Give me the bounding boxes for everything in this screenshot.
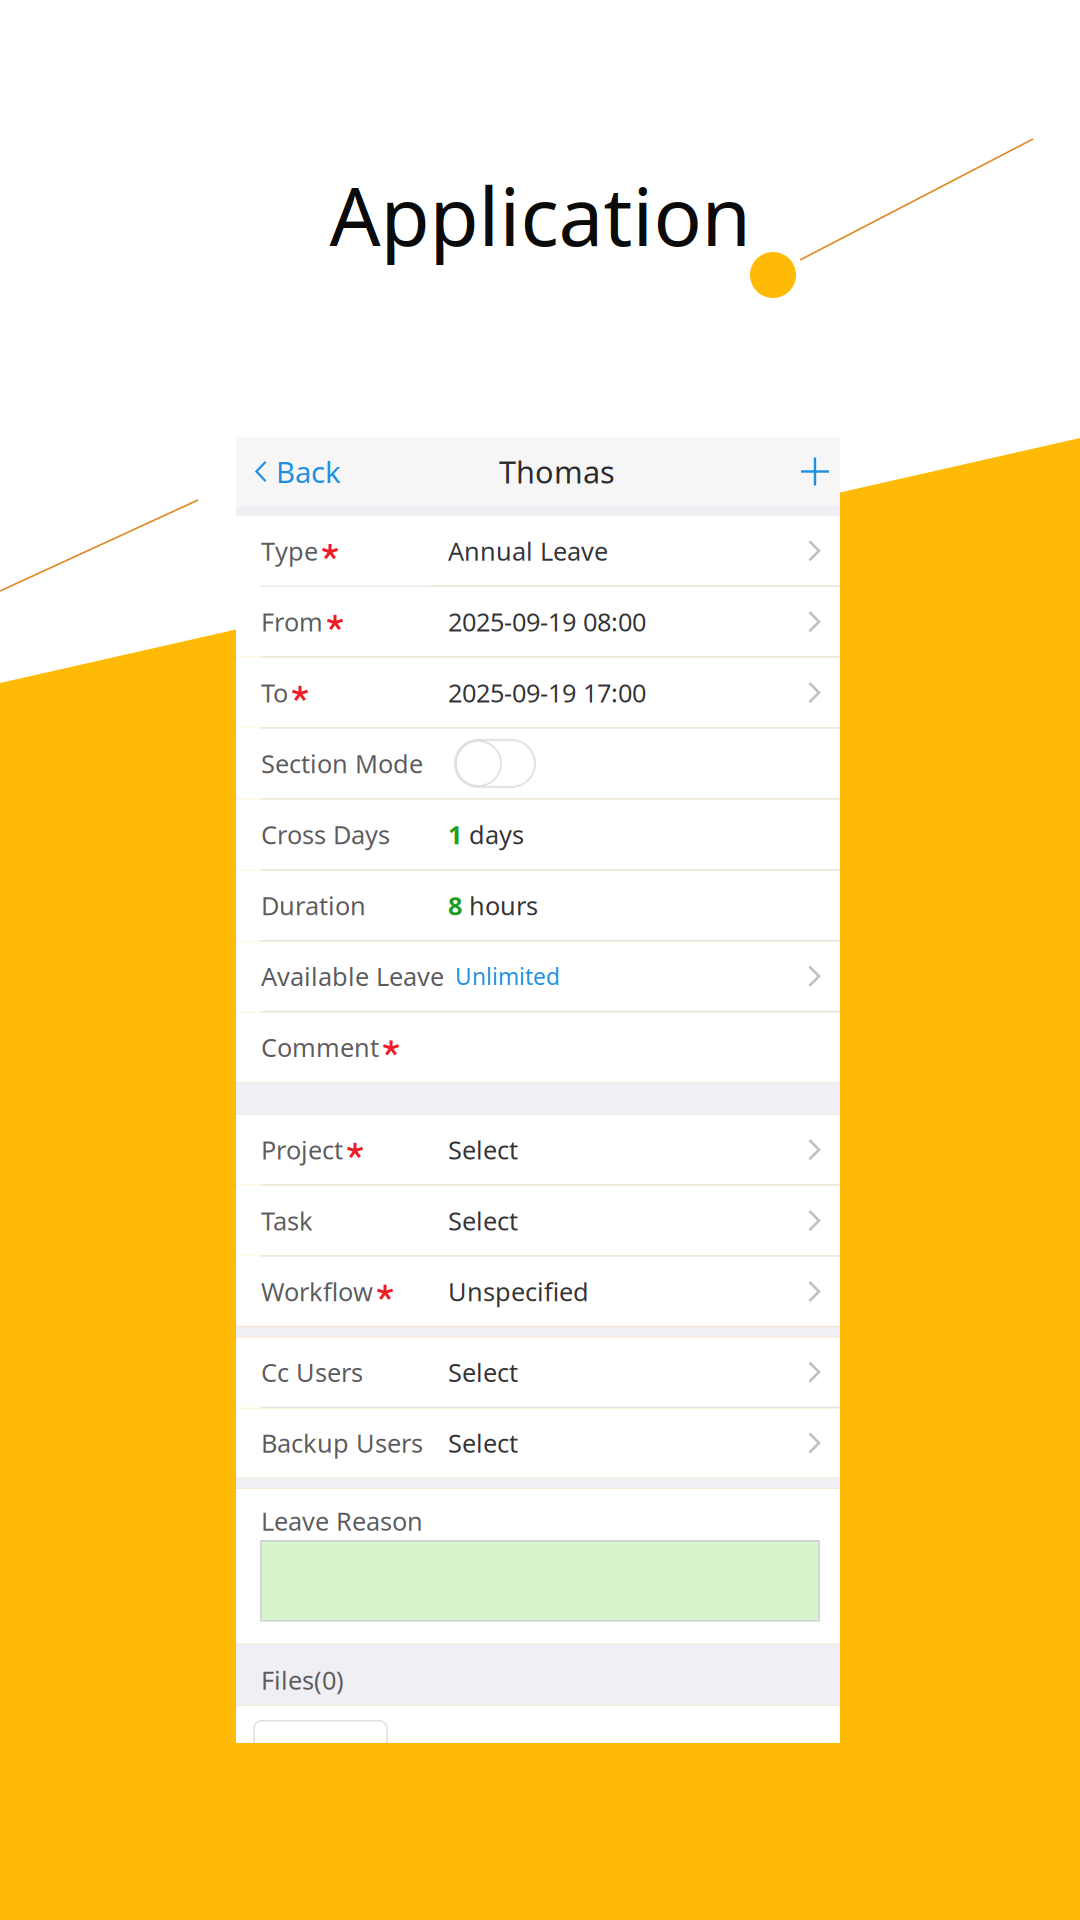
button[interactable]: Available Leave xyxy=(236,941,840,1011)
staticText: Duration xyxy=(261,888,366,922)
button[interactable]: Type xyxy=(236,516,840,586)
staticText: hours xyxy=(462,888,538,922)
staticText: Select xyxy=(448,1426,518,1460)
staticText: Unlimited xyxy=(455,961,560,991)
button[interactable]: Comment xyxy=(236,1012,840,1082)
button[interactable]: Back xyxy=(236,437,357,506)
button[interactable]: Add file xyxy=(254,1721,387,1781)
staticText: Files(0) xyxy=(261,1663,344,1697)
staticText: Unspecified xyxy=(448,1275,589,1308)
staticText: Leave Reason xyxy=(261,1504,423,1538)
staticText: Workflow xyxy=(261,1275,373,1308)
staticText: 2025-09-19 17:00 xyxy=(448,676,646,709)
staticText: Cross Days xyxy=(261,818,390,851)
button[interactable]: Leave reason text field xyxy=(261,1541,819,1621)
staticText: Section Mode xyxy=(261,747,423,780)
staticText: 2025-09-19 08:00 xyxy=(448,605,646,638)
staticText: Annual Leave xyxy=(448,534,608,568)
button[interactable]: Section Mode xyxy=(455,740,535,787)
staticText: 8 xyxy=(448,888,462,922)
button[interactable]: Cc Users xyxy=(236,1337,840,1407)
staticText: Select xyxy=(448,1355,518,1389)
staticText: Select xyxy=(448,1204,518,1237)
staticText: Available Leave xyxy=(261,959,444,993)
staticText: Comment xyxy=(261,1030,379,1064)
staticText: Thomas xyxy=(499,451,615,492)
button[interactable]: To xyxy=(236,658,840,727)
button[interactable]: Project xyxy=(236,1115,840,1184)
button[interactable]: From xyxy=(236,587,840,656)
staticText: To xyxy=(261,676,288,709)
staticText: From xyxy=(261,605,323,638)
staticText: Cc Users xyxy=(261,1355,363,1389)
staticText: Application xyxy=(329,162,750,268)
button[interactable]: Workflow xyxy=(236,1257,840,1326)
staticText: Back xyxy=(276,452,341,491)
staticText: Select xyxy=(448,1133,518,1166)
button[interactable]: Backup Users xyxy=(236,1408,840,1478)
button[interactable]: Add xyxy=(785,437,840,506)
button[interactable]: Task xyxy=(236,1186,840,1255)
staticText: Task xyxy=(261,1204,313,1237)
staticText: days xyxy=(462,818,524,851)
staticText: Project xyxy=(261,1133,343,1166)
staticText: Type xyxy=(261,534,318,568)
staticText: 1 xyxy=(448,818,462,851)
staticText: Backup Users xyxy=(261,1426,423,1460)
